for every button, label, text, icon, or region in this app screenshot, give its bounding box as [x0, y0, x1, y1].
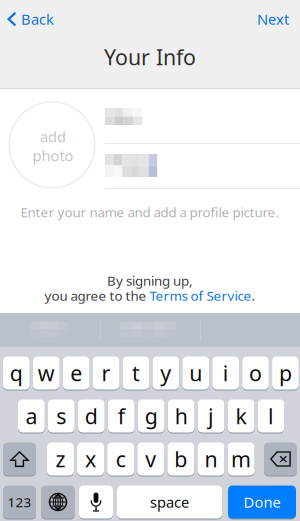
- button[interactable]: n: [197, 442, 224, 476]
- button[interactable]: Shift: [3, 442, 36, 476]
- staticText: .: [251, 287, 255, 304]
- staticText: Done: [243, 492, 280, 512]
- staticText: y: [160, 359, 171, 387]
- button[interactable]: m: [228, 442, 254, 476]
- staticText: z: [55, 445, 65, 473]
- button[interactable]: Done: [228, 485, 296, 519]
- staticText: By signing up,: [107, 272, 193, 289]
- button[interactable]: p: [272, 356, 299, 390]
- staticText: b: [174, 445, 187, 473]
- staticText: f: [118, 402, 125, 430]
- button[interactable]: o: [242, 356, 269, 390]
- button[interactable]: v: [137, 442, 164, 476]
- staticText: space: [150, 492, 189, 512]
- staticText: p: [279, 359, 292, 387]
- button[interactable]: c: [107, 442, 134, 476]
- button[interactable]: e: [63, 356, 89, 390]
- button[interactable]: Delete: [264, 442, 297, 476]
- staticText: h: [175, 402, 188, 430]
- staticText: 123: [7, 493, 31, 511]
- button[interactable]: h: [168, 399, 195, 433]
- button[interactable]: k: [228, 399, 254, 433]
- button[interactable]: a: [18, 399, 45, 433]
- button[interactable]: g: [138, 399, 165, 433]
- button[interactable]: 123: [3, 485, 36, 519]
- button[interactable]: Last name: [105, 145, 297, 188]
- button[interactable]: i: [212, 356, 239, 390]
- button[interactable]: x: [77, 442, 104, 476]
- button[interactable]: Dictate: [79, 485, 113, 519]
- staticText: q: [10, 359, 23, 387]
- staticText: e: [70, 359, 82, 387]
- staticText: you agree to the: [44, 287, 149, 304]
- button[interactable]: s: [48, 399, 75, 433]
- staticText: x: [85, 445, 96, 473]
- button[interactable]: u: [182, 356, 209, 390]
- staticText: photo: [32, 146, 73, 165]
- button[interactable]: y: [152, 356, 179, 390]
- button[interactable]: q: [3, 356, 30, 390]
- button[interactable]: Next keyboard: [41, 485, 75, 519]
- staticText: Your Info: [104, 43, 196, 71]
- staticText: a: [25, 402, 37, 430]
- staticText: Next: [257, 9, 289, 29]
- staticText: add: [40, 127, 66, 146]
- staticText: Terms of Service: [149, 287, 251, 304]
- staticText: d: [85, 402, 98, 430]
- staticText: k: [235, 402, 246, 430]
- button[interactable]: Add photo: [9, 102, 95, 188]
- button[interactable]: r: [93, 356, 119, 390]
- button[interactable]: j: [198, 399, 224, 433]
- staticText: Enter your name and add a profile pictur…: [20, 203, 279, 221]
- button[interactable]: Terms of Service: [149, 287, 251, 304]
- staticText: v: [145, 445, 156, 473]
- staticText: r: [101, 359, 110, 387]
- staticText: t: [132, 359, 140, 387]
- staticText: c: [116, 445, 126, 473]
- staticText: g: [145, 402, 158, 430]
- staticText: Back: [21, 9, 54, 29]
- button[interactable]: space: [117, 485, 222, 519]
- staticText: m: [231, 445, 251, 473]
- button[interactable]: t: [123, 356, 149, 390]
- button[interactable]: b: [167, 442, 194, 476]
- button[interactable]: l: [258, 399, 284, 433]
- button[interactable]: f: [108, 399, 135, 433]
- staticText: w: [38, 359, 55, 387]
- button[interactable]: Back: [1, 6, 64, 32]
- staticText: j: [208, 402, 214, 430]
- staticText: n: [204, 445, 217, 473]
- staticText: s: [56, 402, 66, 430]
- staticText: o: [249, 359, 262, 387]
- staticText: i: [223, 359, 229, 387]
- staticText: l: [268, 402, 274, 430]
- button[interactable]: w: [33, 356, 60, 390]
- button[interactable]: Next: [250, 6, 296, 32]
- staticText: u: [189, 359, 202, 387]
- button[interactable]: First name: [105, 97, 297, 141]
- button[interactable]: d: [78, 399, 105, 433]
- button[interactable]: z: [47, 442, 74, 476]
